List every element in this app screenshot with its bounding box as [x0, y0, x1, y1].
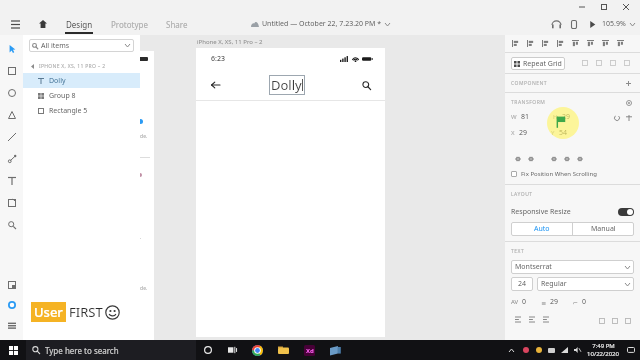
button[interactable]: Close	[615, 0, 637, 13]
staticText: 10/22/2020	[587, 350, 619, 358]
button[interactable]: Center horizontal	[547, 151, 560, 166]
button[interactable]: Align bottom	[598, 35, 613, 52]
button[interactable]: Device preview	[565, 15, 583, 33]
button[interactable]: Align right	[538, 35, 553, 52]
button[interactable]: Google Chrome	[244, 340, 270, 360]
button[interactable]: Align left	[508, 35, 523, 52]
button[interactable]: Menu	[0, 13, 30, 35]
button[interactable]: Flip	[623, 112, 635, 124]
button[interactable]: Text option 1	[595, 314, 608, 327]
button[interactable]: Tray icon 1	[519, 340, 532, 360]
button[interactable]: File Explorer	[270, 340, 296, 360]
button[interactable]: Ellipse	[0, 82, 23, 104]
button[interactable]: Minimize	[571, 0, 593, 13]
button[interactable]: Text option 2	[608, 314, 621, 327]
button[interactable]: Stack option 3	[606, 53, 620, 73]
staticText: W	[511, 113, 517, 121]
button[interactable]: Adobe XD	[296, 340, 322, 360]
button[interactable]: Start	[0, 340, 26, 360]
button[interactable]: Montserrat	[511, 260, 634, 274]
button[interactable]: Polygon	[0, 104, 23, 126]
button[interactable]: Prototype	[102, 13, 157, 35]
button[interactable]: Cortana	[196, 340, 220, 360]
button[interactable]: Pin top bottom	[524, 151, 537, 166]
staticText: 0	[522, 297, 527, 307]
button[interactable]: Line	[0, 126, 23, 148]
button[interactable]: Auto	[511, 222, 572, 236]
staticText: 54	[559, 128, 568, 138]
button[interactable]: Pin left right	[511, 151, 524, 166]
staticText: Montserrat	[515, 262, 552, 272]
button[interactable]: Stack option 4	[620, 53, 634, 73]
button[interactable]: Align center horizontal	[523, 35, 538, 52]
button[interactable]: Rectangle 5	[23, 103, 140, 118]
button[interactable]: Center vertical	[560, 151, 573, 166]
button[interactable]: Coediting	[547, 15, 565, 33]
button[interactable]: Stack option 2	[592, 53, 606, 73]
button[interactable]: Rectangle	[0, 60, 23, 82]
staticText: ude.	[137, 285, 148, 292]
button[interactable]: Other app	[322, 340, 348, 360]
button[interactable]: 7:49 PM	[584, 342, 622, 358]
button[interactable]: Pen	[0, 148, 23, 170]
staticText: Share	[166, 19, 188, 30]
button[interactable]: Responsive Resize toggle	[618, 208, 634, 216]
staticText: AV	[511, 298, 519, 306]
button[interactable]: Network	[558, 340, 571, 360]
staticText: Dolly	[49, 76, 66, 86]
button[interactable]: Align middle	[583, 35, 598, 52]
button[interactable]: Select	[0, 38, 23, 60]
button[interactable]: Add component	[623, 78, 634, 89]
button[interactable]: All items	[29, 39, 134, 52]
button[interactable]: Maximize	[593, 0, 615, 13]
button[interactable]: Text align 2	[525, 313, 539, 327]
button[interactable]: Type here to search	[26, 340, 196, 360]
staticText: Untitled — October 22, 7.23.20 PM *	[262, 19, 382, 29]
button[interactable]: ≡	[541, 297, 559, 307]
staticText: Manual	[591, 224, 616, 234]
button[interactable]: Group 8	[23, 88, 140, 103]
button[interactable]: Back	[205, 75, 225, 95]
button[interactable]: Text align 3	[539, 313, 553, 327]
button[interactable]: Volume	[571, 340, 584, 360]
button[interactable]: Layers	[0, 314, 23, 336]
button[interactable]: Manual	[573, 222, 634, 236]
button[interactable]: Tray icon 3	[545, 340, 558, 360]
button[interactable]: Home	[30, 13, 56, 35]
button[interactable]: Dolly	[23, 73, 140, 88]
staticText: All items	[41, 41, 70, 51]
button[interactable]: Notifications	[622, 340, 640, 360]
button[interactable]: Zoom	[0, 214, 23, 236]
button[interactable]: Stack option 1	[578, 53, 592, 73]
button[interactable]: Text align 1	[511, 313, 525, 327]
button[interactable]: ⌐	[573, 297, 587, 307]
button[interactable]: Artboard	[0, 192, 23, 214]
button[interactable]: Regular	[537, 277, 634, 291]
button[interactable]: Text	[0, 170, 23, 192]
staticText: Repeat Grid	[523, 59, 562, 69]
button[interactable]: IPHONE X, XS, 11 PRO – 2	[23, 60, 140, 73]
button[interactable]: Fix Position When Scrolling	[505, 166, 640, 182]
button[interactable]: Libraries	[0, 274, 23, 296]
button[interactable]: AV	[511, 297, 527, 307]
button[interactable]: Task View	[220, 340, 244, 360]
staticText: Type here to search	[45, 345, 119, 356]
button[interactable]: 24	[511, 277, 533, 291]
button[interactable]: Design	[56, 13, 102, 35]
button[interactable]: 105.9%	[602, 19, 635, 29]
button[interactable]: Rotate	[611, 112, 623, 124]
button[interactable]: Plugins	[0, 296, 23, 314]
button[interactable]: Distribute horizontal	[553, 35, 568, 52]
button[interactable]: Transform settings	[623, 97, 634, 108]
button[interactable]: Desktop preview	[583, 15, 601, 33]
button[interactable]: Show hidden icons	[504, 340, 519, 360]
button[interactable]: Distribute vertical	[613, 35, 628, 52]
button[interactable]: Align top	[568, 35, 583, 52]
button[interactable]: Share	[157, 13, 197, 35]
button[interactable]: Tray icon 2	[532, 340, 545, 360]
button[interactable]: Search	[356, 75, 376, 95]
button[interactable]: Dolly	[271, 76, 303, 94]
button[interactable]: Reset	[573, 151, 586, 166]
button[interactable]: Repeat Grid	[511, 57, 565, 70]
button[interactable]: Text option 3	[621, 314, 634, 327]
